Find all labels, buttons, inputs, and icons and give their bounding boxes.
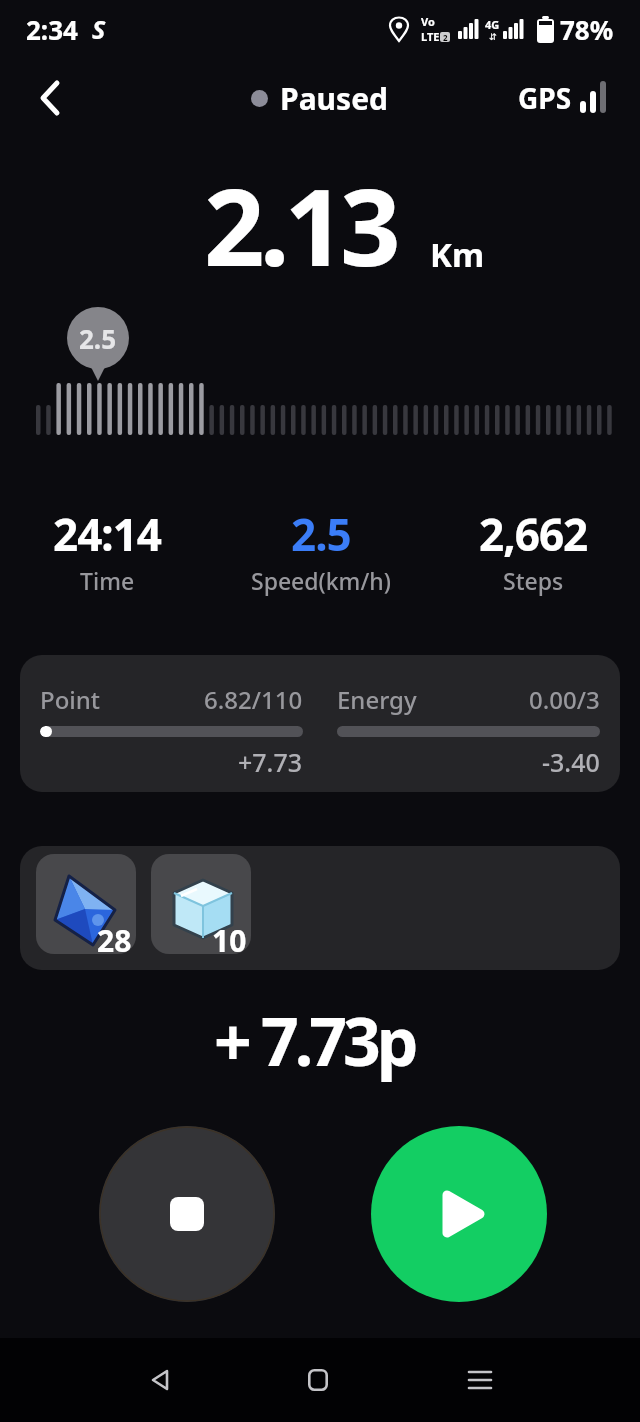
staticText: -3.40 xyxy=(542,745,600,779)
staticText: S xyxy=(92,12,106,46)
staticText: 28 xyxy=(97,920,132,954)
staticText: 24:14 xyxy=(53,504,162,564)
staticText: 2 xyxy=(443,32,448,42)
button[interactable]: 10 xyxy=(151,854,251,954)
staticText: 2.13 xyxy=(204,153,396,297)
staticText: + 7.73p xyxy=(214,995,415,1085)
staticText: 6.82/110 xyxy=(204,683,303,716)
button[interactable] xyxy=(99,1126,275,1302)
staticText: 2.5 xyxy=(291,504,351,564)
staticText: Steps xyxy=(503,565,564,596)
staticText: Vo xyxy=(421,14,435,29)
staticText: GPS xyxy=(518,79,572,117)
staticText: +7.73 xyxy=(238,745,303,779)
staticText: LTE xyxy=(421,29,440,44)
staticText: 10 xyxy=(212,920,247,954)
staticText: Paused xyxy=(280,78,389,119)
staticText: 4G xyxy=(485,17,500,32)
button[interactable]: 28 xyxy=(36,854,136,954)
staticText: Time xyxy=(80,565,135,596)
button[interactable] xyxy=(304,1366,332,1394)
staticText: ⇵ xyxy=(489,32,497,42)
staticText: Point xyxy=(40,683,101,716)
staticText: 2.5 xyxy=(79,321,117,356)
staticText: Km xyxy=(430,232,485,277)
button[interactable]: Point xyxy=(20,655,620,792)
staticText: 0.00/3 xyxy=(529,683,600,716)
button[interactable] xyxy=(146,1366,174,1394)
staticText: 78% xyxy=(560,12,614,47)
button[interactable] xyxy=(466,1366,494,1394)
staticText: Speed(km/h) xyxy=(251,565,391,596)
button[interactable] xyxy=(30,78,70,118)
button[interactable] xyxy=(371,1126,547,1302)
staticText: 2:34 xyxy=(26,12,78,47)
staticText: Energy xyxy=(337,683,417,716)
button[interactable]: GPS xyxy=(518,79,608,117)
staticText: 2,662 xyxy=(479,504,588,564)
